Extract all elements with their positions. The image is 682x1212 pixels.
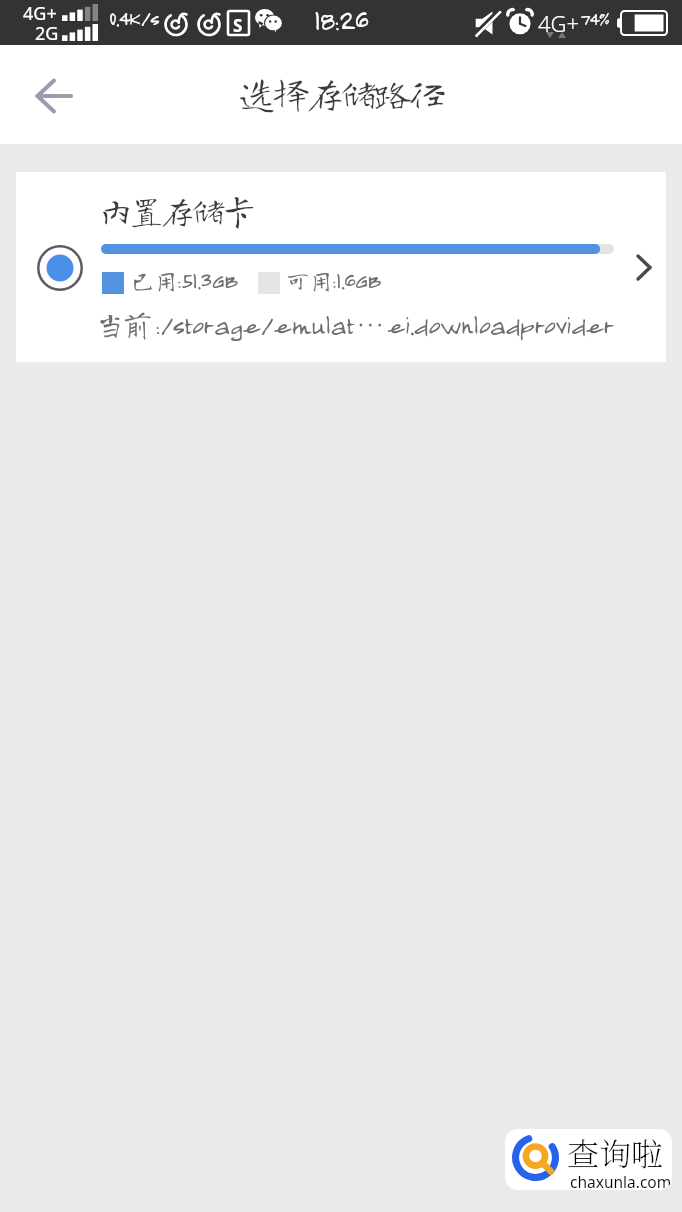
staticText: 74%	[580, 8, 609, 30]
button[interactable]: Select internal storage	[16, 172, 666, 362]
staticText: 已用	[130, 267, 178, 293]
staticText: S	[233, 14, 243, 37]
staticText: chaxunla.com	[570, 1171, 672, 1190]
staticText: 4G+	[538, 8, 580, 38]
button[interactable]: Browse folders	[615, 238, 667, 298]
staticText: 选择存储路径	[238, 74, 443, 111]
staticText: :1.6GB	[331, 265, 381, 293]
button[interactable]: Select internal storage	[29, 237, 91, 299]
staticText: :51.3GB	[176, 265, 238, 293]
staticText: 0.4K/s	[109, 5, 159, 30]
staticText: 查询啦	[567, 1129, 664, 1175]
staticText: 4G+	[23, 1, 57, 26]
staticText: 可用	[285, 267, 333, 293]
staticText: 18:26	[314, 3, 368, 36]
staticText: :/storage/emulat…ei.downloadprovider	[154, 307, 614, 339]
staticText: 内置存储卡	[99, 193, 253, 227]
staticText: 当前	[94, 308, 150, 340]
staticText: 2G	[35, 21, 59, 46]
button[interactable]: Back	[10, 58, 82, 130]
